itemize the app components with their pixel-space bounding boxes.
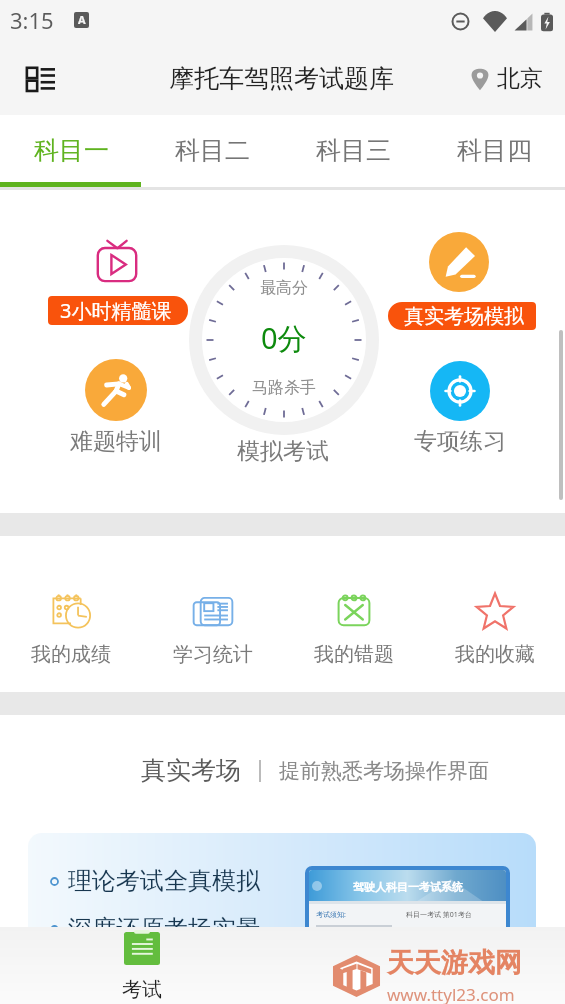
staticText: 真实考场 [141,755,241,786]
button[interactable]: 难题特训 [85,359,147,421]
staticText: 马路杀手 [252,378,316,398]
staticText: 科目一 [34,135,109,166]
button[interactable]: 科目二 [142,115,283,182]
staticText: 难题特训 [70,427,162,456]
staticText: 3:15 [10,5,54,35]
staticText: 科目四 [457,135,532,166]
staticText: 3小时精髓课 [60,297,172,324]
button[interactable]: 我的成绩 [0,536,142,692]
staticText: 考试 [122,977,162,1002]
staticText: 考试须知: [316,910,346,920]
staticText: 我的错题 [314,642,394,667]
staticText: 理论考试全真模拟 [68,866,260,896]
button[interactable]: Menu [16,55,64,103]
staticText: 最高分 [260,278,308,298]
button[interactable]: 考试 [104,930,179,1002]
staticText: 深度还原考场实景 [68,914,260,944]
staticText: 我的成绩 [31,642,111,667]
staticText: www.ttyl23.com [387,983,515,1004]
staticText: 科目三 [316,135,391,166]
staticText: 0分 [261,318,307,358]
button[interactable]: 科目四 [424,115,565,182]
button[interactable]: 理论考试全真模拟 [28,833,536,973]
staticText: 北京 [497,64,543,93]
staticText: 学习统计 [173,642,253,667]
button[interactable]: 科目一 [0,115,142,182]
button[interactable]: 科目三 [283,115,424,182]
staticText: 模拟考试 [237,437,329,466]
button[interactable]: 我的错题 [283,536,424,692]
button[interactable]: 我的收藏 [424,536,565,692]
staticText: 科目一考试 第01考台 [406,910,472,920]
staticText: 科目二 [175,135,250,166]
button[interactable]: 专项练习 [430,361,490,421]
button[interactable]: 北京 [470,64,543,93]
staticText: 我的收藏 [455,642,535,667]
staticText: 专项练习 [414,427,506,456]
staticText: 天天游戏网 [387,946,522,980]
staticText: 摩托车驾照考试题库 [169,63,394,94]
button[interactable]: 模拟考试 [189,245,379,435]
button[interactable]: 真实考场模拟 [429,232,489,292]
staticText: 提前熟悉考场操作界面 [279,758,489,784]
staticText: 真实考场模拟 [404,304,524,329]
staticText: A [78,12,86,27]
button[interactable]: 学习统计 [142,536,283,692]
staticText: 驾驶人科目一考试系统 [353,880,463,894]
